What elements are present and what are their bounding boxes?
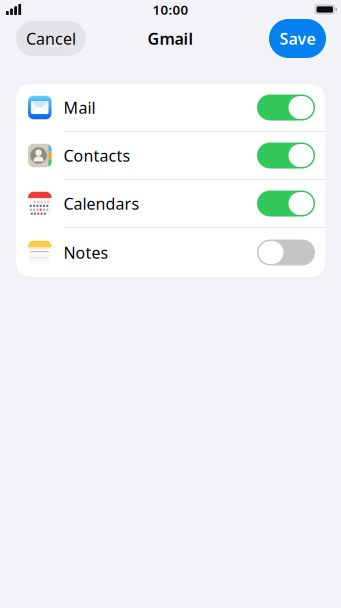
- button[interactable]: Contacts: [16, 132, 325, 179]
- button[interactable]: Notes: [16, 228, 325, 277]
- button[interactable]: Cancel: [16, 21, 86, 56]
- button[interactable]: Calendars: [16, 180, 325, 227]
- staticText: Calendars: [63, 193, 139, 214]
- staticText: Mail: [63, 97, 95, 118]
- staticText: Gmail: [147, 28, 193, 49]
- staticText: Save: [279, 28, 315, 49]
- staticText: Notes: [63, 242, 108, 263]
- staticText: Cancel: [26, 28, 76, 49]
- button[interactable]: Save: [269, 19, 326, 58]
- staticText: 10:00: [152, 0, 188, 19]
- staticText: Contacts: [63, 145, 130, 166]
- button[interactable]: Mail: [16, 84, 325, 131]
